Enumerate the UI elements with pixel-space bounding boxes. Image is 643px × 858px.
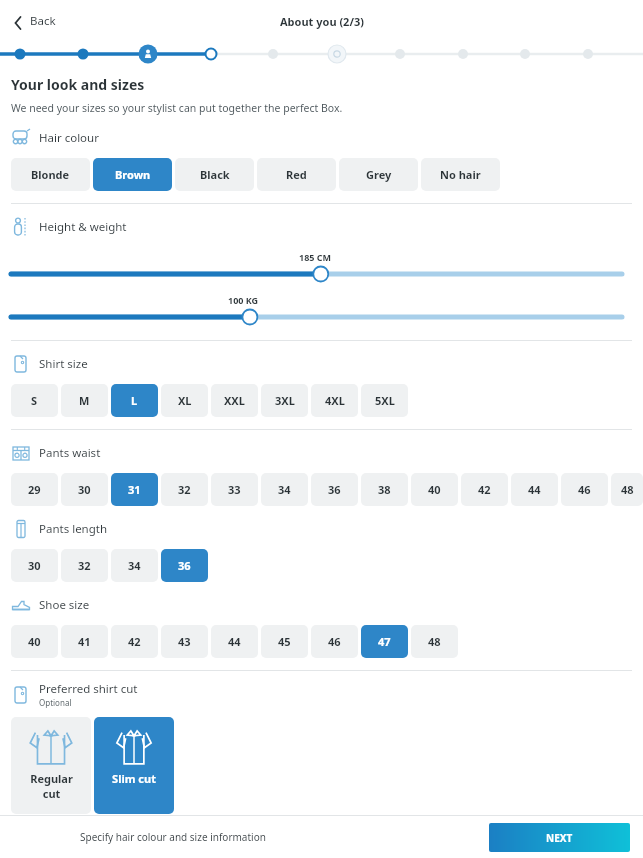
staticText: 46: [578, 482, 591, 497]
button[interactable]: 31: [111, 473, 158, 506]
staticText: 100 KG: [228, 294, 259, 306]
button[interactable]: 44: [211, 625, 258, 658]
staticText: Your look and sizes: [11, 75, 145, 94]
button[interactable]: 48: [611, 473, 643, 506]
button[interactable]: 45: [261, 625, 308, 658]
staticText: 33: [228, 482, 241, 497]
staticText: 36: [328, 482, 341, 497]
staticText: M: [79, 393, 90, 408]
button[interactable]: 36: [161, 549, 208, 582]
staticText: 30: [78, 482, 91, 497]
button[interactable]: 47: [361, 625, 408, 658]
button[interactable]: Grey: [339, 158, 418, 191]
button[interactable]: 36: [311, 473, 358, 506]
staticText: Slim cut: [112, 771, 156, 786]
button[interactable]: 38: [361, 473, 408, 506]
button[interactable]: 3XL: [261, 384, 308, 417]
button[interactable]: 30: [11, 549, 58, 582]
staticText: 41: [78, 634, 91, 649]
button[interactable]: M: [61, 384, 108, 417]
button[interactable]: 32: [161, 473, 208, 506]
staticText: Black: [200, 167, 230, 182]
staticText: Back: [30, 13, 56, 29]
staticText: 5XL: [375, 393, 395, 408]
staticText: 40: [428, 482, 441, 497]
staticText: 31: [128, 482, 141, 497]
staticText: 32: [178, 482, 191, 497]
button[interactable]: 32: [61, 549, 108, 582]
staticText: 3XL: [275, 393, 295, 408]
staticText: We need your sizes so your stylist can p…: [11, 101, 343, 115]
staticText: 46: [328, 634, 341, 649]
button[interactable]: 42: [461, 473, 508, 506]
staticText: 48: [621, 482, 634, 497]
staticText: 44: [528, 482, 541, 497]
staticText: Pants length: [39, 521, 108, 537]
staticText: Hair colour: [39, 130, 99, 146]
staticText: Shirt size: [39, 356, 88, 372]
staticText: NEXT: [546, 831, 573, 845]
button[interactable]: 34: [261, 473, 308, 506]
staticText: 44: [228, 634, 241, 649]
staticText: 34: [128, 558, 141, 573]
staticText: 38: [378, 482, 391, 497]
staticText: No hair: [440, 167, 481, 182]
button[interactable]: 30: [61, 473, 108, 506]
staticText: Shoe size: [39, 597, 90, 613]
button[interactable]: Blonde: [11, 158, 90, 191]
staticText: 30: [28, 558, 41, 573]
staticText: 40: [28, 634, 41, 649]
button[interactable]: 34: [111, 549, 158, 582]
staticText: Pants waist: [39, 445, 101, 461]
button[interactable]: XXL: [211, 384, 258, 417]
button[interactable]: NEXT: [489, 823, 630, 852]
staticText: Red: [286, 167, 307, 182]
button[interactable]: No hair: [421, 158, 500, 191]
button[interactable]: 40: [11, 625, 58, 658]
staticText: 36: [178, 558, 191, 573]
button[interactable]: 46: [311, 625, 358, 658]
button[interactable]: Back: [8, 9, 60, 33]
button[interactable]: Red: [257, 158, 336, 191]
staticText: About you (2/3): [280, 14, 364, 29]
staticText: 34: [278, 482, 291, 497]
button[interactable]: 40: [411, 473, 458, 506]
staticText: 42: [128, 634, 141, 649]
staticText: 29: [28, 482, 41, 497]
staticText: Specify hair colour and size information: [80, 830, 266, 844]
staticText: Grey: [366, 167, 392, 182]
staticText: Blonde: [31, 167, 70, 182]
staticText: L: [131, 393, 138, 408]
staticText: 185 CM: [299, 251, 332, 263]
button[interactable]: Regular cut: [11, 717, 91, 814]
button[interactable]: Slim cut: [94, 717, 174, 814]
staticText: 43: [178, 634, 191, 649]
button[interactable]: 33: [211, 473, 258, 506]
staticText: Brown: [115, 167, 151, 182]
button[interactable]: 44: [511, 473, 558, 506]
staticText: Preferred shirt cut: [39, 681, 138, 697]
staticText: 32: [78, 558, 91, 573]
staticText: 4XL: [325, 393, 345, 408]
button[interactable]: 5XL: [361, 384, 408, 417]
button[interactable]: 43: [161, 625, 208, 658]
staticText: XXL: [224, 393, 245, 408]
staticText: Regular cut: [30, 771, 73, 801]
staticText: Optional: [39, 697, 72, 708]
staticText: Height & weight: [39, 219, 127, 235]
button[interactable]: 41: [61, 625, 108, 658]
staticText: 45: [278, 634, 291, 649]
button[interactable]: L: [111, 384, 158, 417]
button[interactable]: Brown: [93, 158, 172, 191]
button[interactable]: S: [11, 384, 58, 417]
button[interactable]: 48: [411, 625, 458, 658]
button[interactable]: 4XL: [311, 384, 358, 417]
staticText: 42: [478, 482, 491, 497]
button[interactable]: XL: [161, 384, 208, 417]
staticText: XL: [178, 393, 192, 408]
button[interactable]: Black: [175, 158, 254, 191]
button[interactable]: 29: [11, 473, 58, 506]
button[interactable]: 42: [111, 625, 158, 658]
button[interactable]: 46: [561, 473, 608, 506]
staticText: 48: [428, 634, 441, 649]
